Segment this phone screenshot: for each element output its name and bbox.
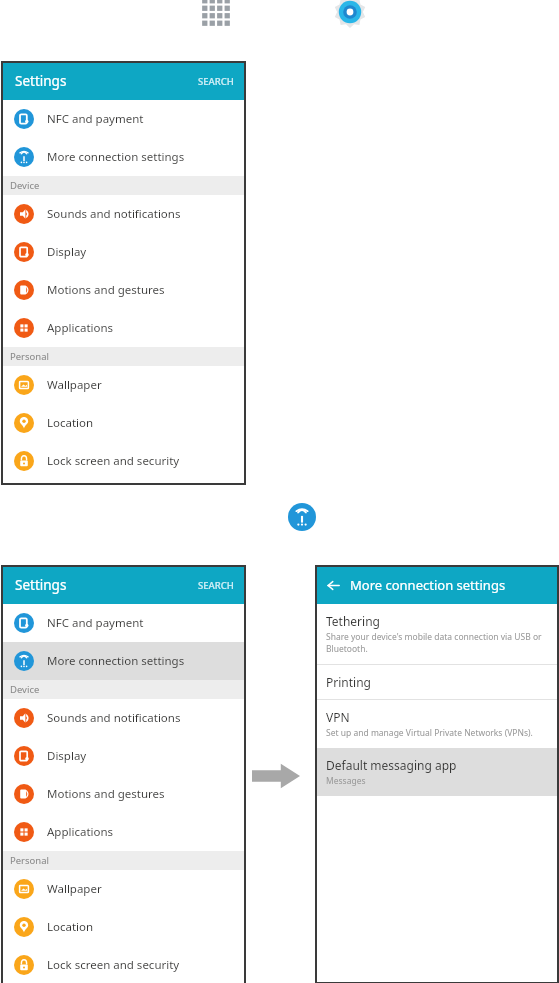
staticText: Sounds and notifications (47, 206, 181, 222)
button[interactable]: VPN (316, 700, 558, 748)
button[interactable]: Wallpaper (2, 366, 245, 404)
button[interactable]: Sounds and notifications (2, 699, 245, 737)
button[interactable]: Settings (333, 0, 367, 29)
staticText: Share your device's mobile data connecti… (326, 631, 548, 655)
button[interactable]: Lock screen and security (2, 442, 245, 480)
staticText: Set up and manage Virtual Private Networ… (326, 727, 533, 739)
button[interactable]: Sounds and notifications (2, 195, 245, 233)
staticText: Device (10, 179, 40, 192)
button[interactable]: More connection settings (2, 138, 245, 176)
staticText: NFC and payment (47, 615, 144, 631)
staticText: Messages (326, 775, 366, 787)
staticText: More connection settings (47, 653, 185, 669)
staticText: Lock screen and security (47, 453, 180, 469)
button[interactable]: Printing (316, 665, 558, 699)
staticText: Applications (47, 824, 114, 840)
staticText: SEARCH (198, 75, 234, 88)
staticText: Settings (15, 576, 67, 594)
button[interactable]: Display (2, 737, 245, 775)
button[interactable]: Applications (2, 813, 245, 851)
button[interactable]: Apps (199, 0, 233, 29)
staticText: More connection settings (350, 576, 506, 594)
button[interactable]: Default messaging app (316, 748, 558, 796)
button[interactable]: Tethering (316, 604, 558, 664)
button[interactable]: Applications (2, 309, 245, 347)
staticText: Display (47, 244, 87, 260)
staticText: Display (47, 748, 87, 764)
button[interactable]: SEARCH (187, 571, 245, 600)
staticText: Lock screen and security (47, 957, 180, 973)
staticText: Tethering (326, 613, 380, 629)
staticText: Wallpaper (47, 377, 102, 393)
staticText: Motions and gestures (47, 786, 165, 802)
button[interactable]: Motions and gestures (2, 775, 245, 813)
staticText: VPN (326, 709, 350, 725)
staticText: Wallpaper (47, 881, 102, 897)
staticText: Printing (326, 674, 371, 690)
button[interactable]: Location (2, 908, 245, 946)
staticText: Location (47, 415, 94, 431)
button[interactable]: Back (316, 568, 350, 602)
staticText: Personal (10, 854, 49, 867)
button[interactable]: Location (2, 404, 245, 442)
button[interactable]: NFC and payment (2, 604, 245, 642)
staticText: Personal (10, 350, 49, 363)
button[interactable]: SEARCH (187, 67, 245, 96)
staticText: Default messaging app (326, 757, 457, 773)
staticText: SEARCH (198, 579, 234, 592)
staticText: NFC and payment (47, 111, 144, 127)
staticText: Settings (15, 72, 67, 90)
button[interactable]: Wallpaper (2, 870, 245, 908)
button[interactable]: Display (2, 233, 245, 271)
staticText: Device (10, 683, 40, 696)
button[interactable]: Lock screen and security (2, 946, 245, 983)
staticText: More connection settings (47, 149, 185, 165)
staticText: Location (47, 919, 94, 935)
button[interactable]: NFC and payment (2, 100, 245, 138)
staticText: Sounds and notifications (47, 710, 181, 726)
button[interactable]: Motions and gestures (2, 271, 245, 309)
button[interactable]: More connection settings (2, 642, 245, 680)
staticText: Applications (47, 320, 114, 336)
staticText: Motions and gestures (47, 282, 165, 298)
